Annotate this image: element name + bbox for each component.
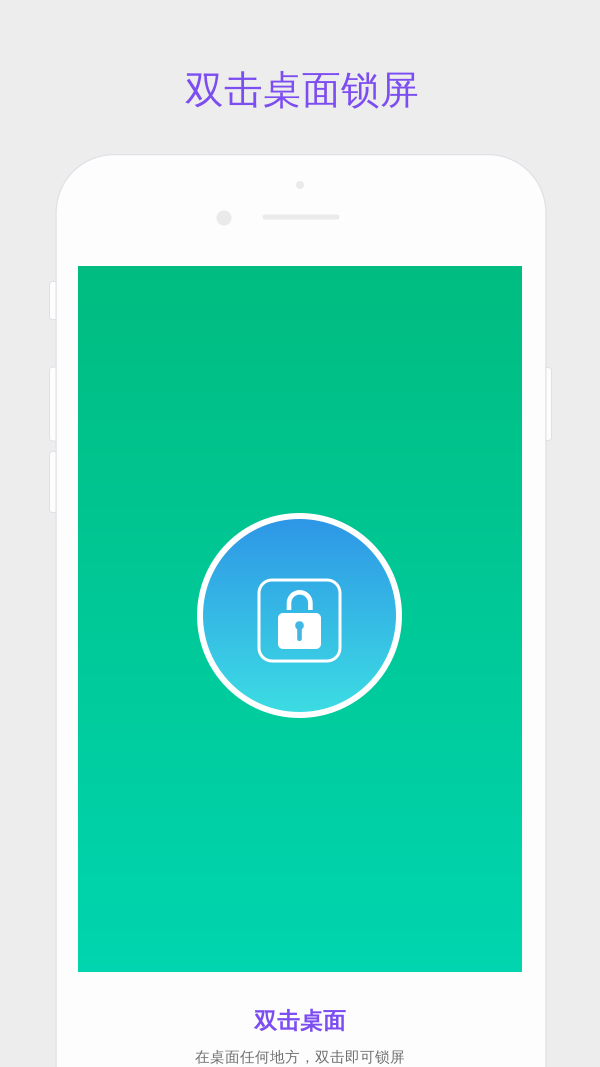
- staticText: 双击桌面: [254, 1007, 346, 1035]
- staticText: 在桌面任何地方，双击即可锁屏: [195, 1048, 405, 1066]
- staticText: 双击桌面锁屏: [185, 66, 419, 114]
- button[interactable]: 锁屏: [197, 513, 402, 718]
